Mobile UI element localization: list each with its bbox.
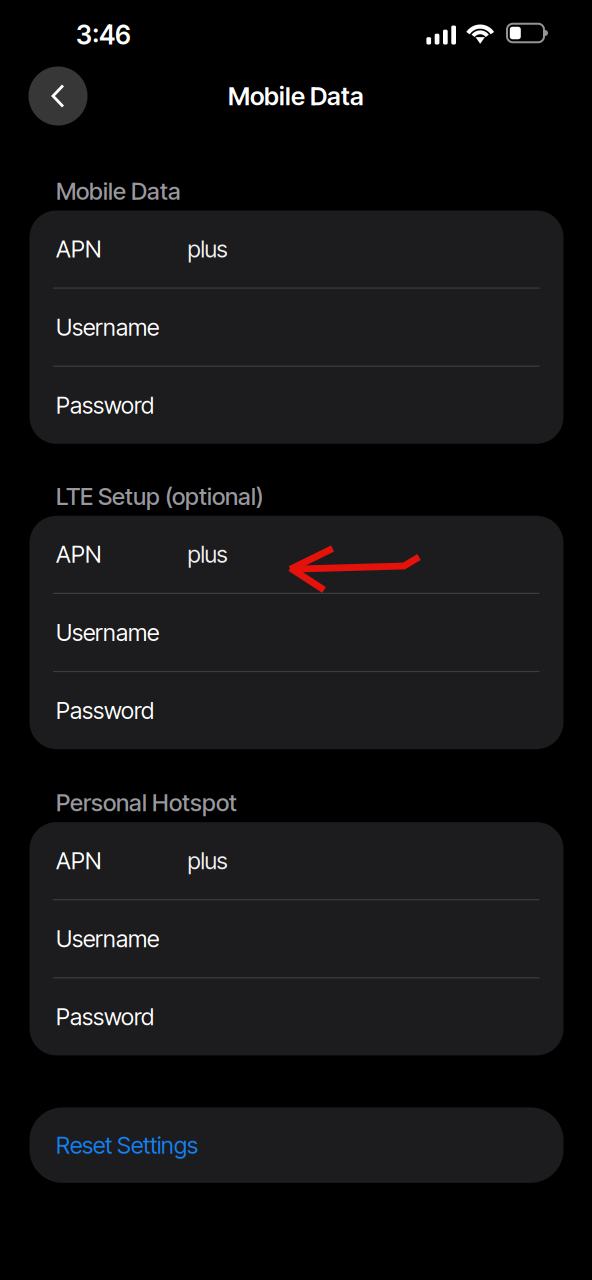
staticText: plus <box>187 235 227 263</box>
staticText: APN <box>56 540 101 568</box>
staticText: Username <box>56 313 159 341</box>
button[interactable]: Password <box>29 367 563 444</box>
staticText: Personal Hotspot <box>56 788 237 817</box>
button[interactable]: Password <box>29 978 563 1055</box>
button[interactable]: APN <box>29 210 563 288</box>
staticText: Password <box>56 1003 154 1031</box>
button[interactable]: APN <box>29 516 563 593</box>
button[interactable]: Password <box>29 672 563 749</box>
staticText: Password <box>56 696 154 725</box>
button[interactable]: APN <box>29 822 563 899</box>
staticText: plus <box>187 540 227 568</box>
button[interactable]: Back <box>28 66 87 125</box>
button[interactable]: Username <box>29 594 563 671</box>
button[interactable]: Username <box>29 289 563 366</box>
staticText: Mobile Data <box>56 177 181 205</box>
staticText: Password <box>56 391 154 419</box>
button[interactable]: Username <box>29 900 563 977</box>
button[interactable]: Reset Settings <box>29 1107 563 1183</box>
staticText: Username <box>56 925 159 953</box>
staticText: LTE Setup (optional) <box>56 482 264 511</box>
staticText: APN <box>56 846 101 875</box>
staticText: APN <box>56 235 101 263</box>
staticText: Reset Settings <box>56 1131 198 1159</box>
staticText: Mobile Data <box>228 81 364 111</box>
staticText: Username <box>56 618 159 646</box>
staticText: 3:46 <box>76 19 131 51</box>
staticText: plus <box>187 846 227 875</box>
